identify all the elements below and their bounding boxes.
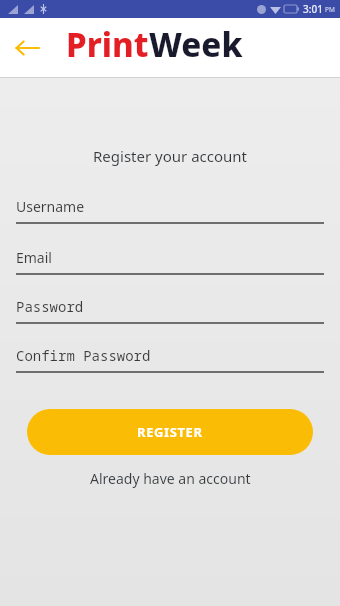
staticText: Already have an account [90,469,251,488]
staticText: Week [149,22,243,67]
staticText: Confirm Password [16,346,151,365]
staticText: Register your account [93,146,247,166]
button[interactable]: Username [16,197,324,224]
button[interactable]: Already have an account [0,469,340,488]
staticText: Print [66,22,149,67]
button[interactable]: REGISTER [27,409,313,455]
staticText: REGISTER [137,423,203,441]
button[interactable]: Email [16,248,324,275]
staticText: 3:01 [303,2,323,16]
staticText: PM [325,5,335,14]
staticText: Email [16,248,52,267]
staticText: Password [16,297,84,316]
button[interactable]: Back [6,27,48,69]
staticText: Username [16,197,85,216]
button[interactable]: Confirm Password [16,346,324,373]
button[interactable]: Password [16,297,324,324]
